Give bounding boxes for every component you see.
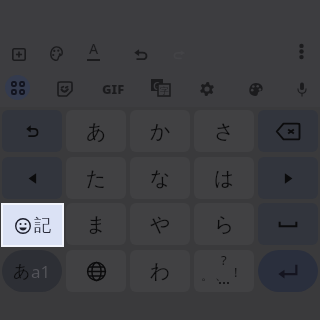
staticText: あ xyxy=(13,261,31,282)
button[interactable]: Delete xyxy=(258,110,318,152)
button[interactable]: Text formatting xyxy=(76,33,110,67)
button[interactable]: More options xyxy=(284,34,318,68)
button[interactable]: わ xyxy=(130,250,190,292)
button[interactable]: Add xyxy=(2,37,36,71)
button[interactable]: Stickers xyxy=(48,72,82,106)
staticText: G xyxy=(153,79,161,91)
button[interactable]: Open features menu xyxy=(5,75,30,100)
staticText: わ xyxy=(150,259,171,284)
button[interactable]: は xyxy=(194,157,254,199)
button[interactable]: Themes xyxy=(239,72,273,106)
button[interactable]: Theme xyxy=(39,36,73,70)
button[interactable]: あ xyxy=(66,110,126,152)
button[interactable]: Translate xyxy=(143,71,177,105)
button[interactable]: Switch input mode xyxy=(2,250,62,292)
staticText: a1 xyxy=(31,260,51,283)
button[interactable]: ら xyxy=(194,203,254,245)
staticText: ら xyxy=(214,212,235,237)
staticText: は xyxy=(214,166,235,191)
button[interactable]: た xyxy=(66,157,126,199)
button[interactable]: Enter xyxy=(258,250,318,292)
staticText: ま xyxy=(86,212,107,237)
button[interactable]: な xyxy=(130,157,190,199)
staticText: 記 xyxy=(34,215,51,236)
button[interactable]: ま xyxy=(66,203,126,245)
staticText: や xyxy=(150,212,171,237)
staticText: た xyxy=(86,166,107,191)
button[interactable]: Move cursor right xyxy=(258,157,318,199)
button[interactable]: Undo xyxy=(2,110,62,152)
button[interactable]: emojidark xyxy=(2,203,62,245)
staticText: GIF xyxy=(102,80,125,98)
button[interactable]: Move cursor left xyxy=(2,157,62,199)
staticText: か xyxy=(150,119,171,144)
button[interactable]: さ xyxy=(194,110,254,152)
staticText: さ xyxy=(214,119,235,144)
staticText: ! xyxy=(234,263,238,281)
staticText: ? xyxy=(221,251,227,269)
button[interactable]: や xyxy=(130,203,190,245)
button[interactable]: か xyxy=(130,110,190,152)
button[interactable]: Voice input xyxy=(285,72,319,106)
staticText: A xyxy=(89,39,99,58)
button[interactable]: Punctuation xyxy=(194,250,254,292)
button[interactable]: Change language xyxy=(66,250,126,292)
button[interactable]: Undo xyxy=(124,37,158,71)
button[interactable]: GIF xyxy=(98,74,128,104)
staticText: な xyxy=(150,166,171,191)
button[interactable]: Settings xyxy=(190,72,224,106)
button[interactable]: Space xyxy=(258,203,318,245)
staticText: あ xyxy=(86,119,107,144)
staticText: 字 xyxy=(160,85,169,96)
staticText: 。 xyxy=(201,268,213,283)
staticText: 記 xyxy=(34,214,51,235)
button[interactable]: Emoji and symbols xyxy=(3,205,62,245)
